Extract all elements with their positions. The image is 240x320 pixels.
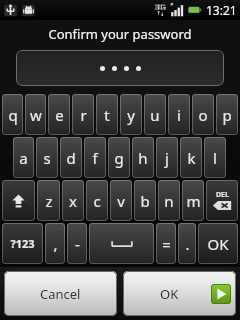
- button[interactable]: u: [144, 94, 166, 135]
- button[interactable]: z: [37, 180, 60, 221]
- button[interactable]: h: [132, 137, 154, 178]
- button[interactable]: q: [2, 94, 23, 135]
- staticText: =: [162, 234, 171, 254]
- staticText: z: [45, 191, 53, 211]
- button[interactable]: v: [110, 180, 132, 221]
- other: Android debugging: [21, 3, 36, 18]
- button[interactable]: f: [84, 137, 106, 178]
- staticText: e: [55, 105, 64, 125]
- other: USB connected: [3, 3, 18, 18]
- button[interactable]: ,: [45, 223, 65, 264]
- staticText: k: [187, 148, 196, 168]
- staticText: j: [165, 148, 169, 168]
- staticText: r: [80, 105, 87, 125]
- staticText: -: [75, 234, 80, 254]
- button[interactable]: w: [25, 94, 46, 135]
- button[interactable]: .: [178, 223, 196, 264]
- staticText: n: [164, 191, 174, 211]
- button[interactable]: n: [158, 180, 180, 221]
- staticText: ,: [53, 234, 58, 254]
- staticText: t: [104, 105, 110, 125]
- button[interactable]: d: [60, 137, 82, 178]
- staticText: s: [43, 148, 51, 168]
- staticText: h: [138, 148, 148, 168]
- button[interactable]: m: [182, 180, 204, 221]
- button[interactable]: r: [72, 94, 94, 135]
- button[interactable]: y: [120, 94, 142, 135]
- button[interactable]: a: [13, 137, 34, 178]
- button[interactable]: [16, 50, 224, 86]
- staticText: p: [222, 105, 232, 125]
- button[interactable]: =: [156, 223, 176, 264]
- staticText: a: [19, 148, 28, 168]
- staticText: OK: [207, 234, 229, 254]
- button[interactable]: o: [192, 94, 214, 135]
- staticText: i: [177, 105, 181, 125]
- staticText: OK: [160, 285, 179, 303]
- button[interactable]: x: [62, 180, 84, 221]
- staticText: y: [127, 105, 135, 125]
- other: Battery: [187, 3, 202, 17]
- button[interactable]: Delete: [206, 180, 238, 221]
- button[interactable]: OK: [123, 271, 236, 316]
- button[interactable]: s: [36, 137, 58, 178]
- staticText: b: [140, 191, 150, 211]
- button[interactable]: l: [204, 137, 226, 178]
- staticText: o: [198, 105, 208, 125]
- staticText: .: [185, 234, 190, 254]
- button[interactable]: e: [48, 94, 70, 135]
- staticText: x: [69, 191, 77, 211]
- button[interactable]: i: [168, 94, 190, 135]
- button[interactable]: j: [156, 137, 178, 178]
- staticText: 13:21: [206, 2, 237, 18]
- button[interactable]: Cancel: [4, 271, 117, 316]
- button[interactable]: k: [180, 137, 202, 178]
- staticText: g: [114, 148, 124, 168]
- staticText: v: [117, 191, 125, 211]
- staticText: q: [8, 105, 18, 125]
- button[interactable]: c: [86, 180, 108, 221]
- button[interactable]: Shift: [2, 180, 35, 221]
- other: 3G data: [154, 3, 168, 17]
- staticText: m: [186, 191, 201, 211]
- other: Signal strength: [170, 3, 184, 17]
- staticText: w: [30, 105, 42, 125]
- button[interactable]: -: [67, 223, 87, 264]
- staticText: l: [213, 148, 217, 168]
- staticText: Cancel: [40, 285, 81, 303]
- staticText: ?123: [10, 236, 35, 251]
- staticText: u: [150, 105, 160, 125]
- staticText: c: [93, 191, 101, 211]
- button[interactable]: Space: [89, 223, 154, 264]
- button[interactable]: p: [216, 94, 238, 135]
- button[interactable]: ?123: [2, 223, 43, 264]
- staticText: d: [66, 148, 76, 168]
- staticText: f: [92, 148, 98, 168]
- button[interactable]: b: [134, 180, 156, 221]
- staticText: DEL: [216, 190, 229, 200]
- button[interactable]: g: [108, 137, 130, 178]
- button[interactable]: OK: [198, 223, 238, 264]
- staticText: Confirm your password: [48, 25, 192, 43]
- button[interactable]: t: [96, 94, 118, 135]
